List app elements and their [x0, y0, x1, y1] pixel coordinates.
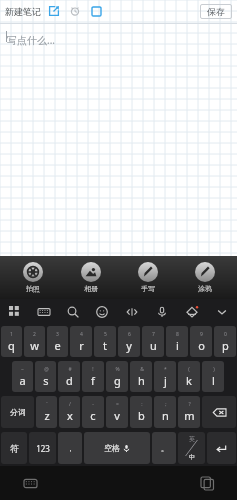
button[interactable]: Checklist	[89, 4, 103, 18]
button[interactable]: 8	[166, 326, 188, 357]
staticText: ?	[188, 401, 191, 408]
button[interactable]: @	[35, 361, 56, 392]
staticText: l	[212, 373, 215, 388]
button[interactable]: 2	[24, 326, 45, 357]
button[interactable]: -	[82, 396, 104, 428]
staticText: e	[54, 338, 61, 353]
staticText: %	[115, 366, 120, 373]
button[interactable]: Delete	[202, 396, 236, 428]
button[interactable]: Emoji	[87, 299, 117, 324]
button[interactable]: 9	[190, 326, 212, 357]
button[interactable]: 涂鸦	[176, 256, 233, 299]
staticText: 6	[128, 331, 131, 338]
staticText: o	[198, 338, 205, 353]
button[interactable]: Voice input	[147, 299, 177, 324]
staticText: r	[79, 338, 84, 353]
staticText: 0	[224, 331, 227, 338]
staticText: )	[213, 366, 215, 373]
button[interactable]: `	[36, 396, 57, 428]
staticText: i	[176, 338, 179, 353]
button[interactable]: 拍照	[4, 256, 62, 299]
button[interactable]: Theme	[177, 299, 207, 324]
staticText: *	[164, 366, 167, 373]
button[interactable]: Apps	[0, 299, 29, 324]
staticText: 3	[56, 331, 59, 338]
staticText: g	[114, 373, 121, 388]
button[interactable]: 5	[94, 326, 116, 357]
staticText: x	[67, 408, 73, 423]
button[interactable]: (	[178, 361, 200, 392]
staticText: p	[222, 338, 229, 353]
staticText: y	[126, 338, 132, 353]
staticText: 中	[189, 453, 195, 461]
staticText: `	[46, 401, 48, 408]
staticText: 分词	[10, 407, 26, 417]
staticText: 涂鸦	[198, 284, 212, 293]
button[interactable]: 1	[1, 326, 22, 357]
button[interactable]: 0	[214, 326, 236, 357]
button[interactable]: 相册	[62, 256, 119, 299]
button[interactable]: 符	[1, 432, 27, 464]
button[interactable]: *	[154, 361, 176, 392]
button[interactable]: 123	[29, 432, 56, 464]
button[interactable]: Set reminder	[68, 4, 82, 18]
staticText: ~	[21, 366, 24, 373]
staticText: 1	[10, 331, 13, 338]
button[interactable]: 分词	[1, 396, 34, 428]
staticText: v	[114, 408, 120, 423]
staticText: 8	[176, 331, 179, 338]
button[interactable]: Enter	[207, 432, 236, 464]
button[interactable]: /	[59, 396, 80, 428]
staticText: 2	[33, 331, 36, 338]
staticText: &	[140, 366, 144, 373]
button[interactable]: Search	[58, 299, 87, 324]
button[interactable]: Recent apps	[177, 466, 237, 500]
button[interactable]: #	[58, 361, 80, 392]
staticText: 英	[189, 435, 195, 443]
staticText: b	[138, 408, 145, 423]
staticText: s	[43, 373, 49, 388]
button[interactable]: Keyboard layout	[29, 299, 58, 324]
button[interactable]: Share note	[47, 4, 61, 18]
staticText: 。	[161, 444, 168, 453]
button[interactable]: 。	[152, 432, 176, 464]
staticText: @	[44, 366, 49, 373]
button[interactable]: 空格	[84, 432, 150, 464]
staticText: a	[19, 373, 26, 388]
button[interactable]: 3	[47, 326, 68, 357]
staticText: 相册	[84, 284, 98, 293]
button[interactable]: ;	[154, 396, 176, 428]
button[interactable]: ~	[12, 361, 33, 392]
button[interactable]: ，	[58, 432, 82, 464]
button[interactable]: 新建笔记	[5, 6, 41, 17]
button[interactable]: 保存	[200, 4, 232, 19]
button[interactable]: Hide keyboard	[0, 466, 60, 500]
staticText: 手写	[141, 284, 155, 293]
button[interactable]: ?	[178, 396, 200, 428]
button[interactable]: Switch English Chinese	[178, 432, 205, 464]
staticText: k	[186, 373, 192, 388]
staticText: -	[92, 401, 94, 408]
staticText: :	[141, 401, 143, 408]
staticText: 符	[10, 443, 19, 454]
staticText: d	[66, 373, 73, 388]
button[interactable]: %	[106, 361, 128, 392]
staticText: n	[162, 408, 169, 423]
button[interactable]: :	[130, 396, 152, 428]
button[interactable]: Clipboard	[117, 299, 147, 324]
staticText: 空格	[104, 443, 120, 453]
button[interactable]: 6	[118, 326, 140, 357]
button[interactable]: 4	[70, 326, 92, 357]
button[interactable]: Hide keyboard	[207, 299, 237, 324]
button[interactable]: 7	[142, 326, 164, 357]
button[interactable]: =	[106, 396, 128, 428]
button[interactable]: !	[82, 361, 104, 392]
staticText: 9	[200, 331, 203, 338]
staticText: (	[188, 366, 190, 373]
button[interactable]: &	[130, 361, 152, 392]
staticText: !	[92, 366, 94, 373]
button[interactable]: 手写	[119, 256, 176, 299]
staticText: c	[90, 408, 96, 423]
button[interactable]: )	[202, 361, 224, 392]
staticText: 123	[36, 443, 50, 454]
